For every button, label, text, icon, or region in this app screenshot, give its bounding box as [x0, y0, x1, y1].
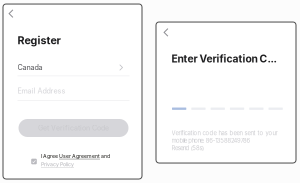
button[interactable]: Canada — [17, 58, 142, 77]
button[interactable]: Get Verification Code — [18, 119, 128, 137]
staticText: Email Address — [17, 86, 65, 95]
staticText: mobile phone: 86-13588249786 — [171, 137, 250, 144]
staticText: Verification code has been sent to your — [171, 129, 277, 137]
staticText: Enter Verification C... — [171, 52, 276, 65]
staticText: Register — [17, 34, 60, 47]
staticText: Canada — [17, 63, 42, 72]
button[interactable]: Back — [4, 7, 18, 21]
staticText: I Agree User Agreement and — [41, 153, 110, 159]
button[interactable]: Back — [159, 25, 173, 39]
staticText: Resend (58s) — [171, 144, 204, 152]
staticText: Privacy Policy — [41, 161, 74, 168]
button[interactable]: Agree to terms — [29, 157, 38, 166]
